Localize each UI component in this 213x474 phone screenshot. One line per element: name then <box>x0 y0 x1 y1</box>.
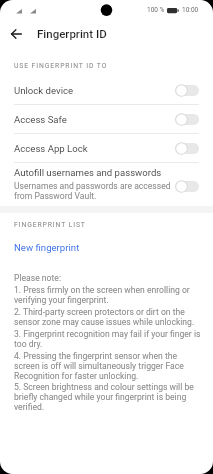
button[interactable]: Access Safe <box>0 105 213 134</box>
staticText: 10:00 <box>182 6 199 14</box>
button[interactable] <box>0 20 32 47</box>
staticText: Usernames and passwords are accessed fro… <box>14 181 171 201</box>
button[interactable]: New fingerprint <box>0 229 213 253</box>
button[interactable]: Unlock device <box>0 76 213 105</box>
staticText: USE FINGERPRINT ID TO <box>14 62 108 70</box>
staticText: 2. Third-party screen protectors or dirt… <box>14 307 195 327</box>
button[interactable]: Access App Lock <box>0 134 213 163</box>
staticText: Autofill usernames and passwords <box>14 167 162 178</box>
staticText: 100 % <box>147 6 165 14</box>
button[interactable]: Autofill usernames and passwords <box>0 163 213 206</box>
staticText: 5. Screen brightness and colour settings… <box>14 382 194 412</box>
staticText: Access Safe <box>14 114 67 125</box>
staticText: Unlock device <box>14 85 74 96</box>
staticText: New fingerprint <box>14 242 80 253</box>
staticText: 4. Pressing the fingerprint sensor when … <box>14 351 184 381</box>
staticText: Access App Lock <box>14 143 88 154</box>
staticText: 1. Press firmly on the screen when enrol… <box>14 285 190 305</box>
staticText: 3. Fingerprint recognition may fail if y… <box>14 329 201 349</box>
staticText: Fingerprint ID <box>37 27 107 40</box>
staticText: FINGERPRINT LIST <box>14 221 86 229</box>
staticText: Please note: <box>14 273 61 283</box>
